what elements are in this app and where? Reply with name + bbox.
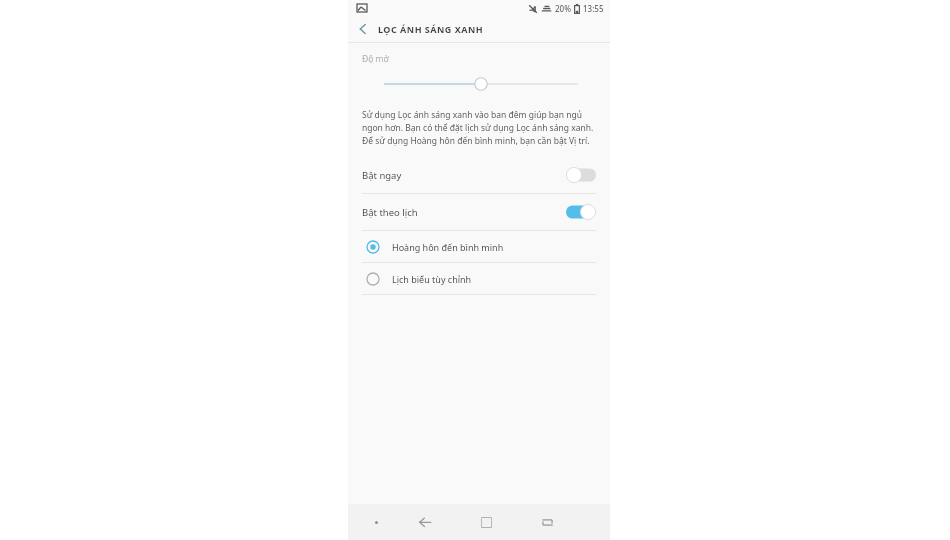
- button[interactable]: Show keyboard: [354, 504, 398, 540]
- button[interactable]: Back: [398, 504, 452, 540]
- button[interactable]: Home: [460, 504, 512, 540]
- staticText: LỌC ÁNH SÁNG XANH: [378, 23, 484, 35]
- staticText: Độ mờ: [362, 53, 389, 65]
- button[interactable]: Bật ngay: [348, 157, 610, 193]
- staticText: Sử dụng Lọc ánh sáng xanh vào ban đêm gi…: [362, 109, 594, 147]
- staticText: 20%: [555, 3, 571, 14]
- staticText: 13:55: [583, 3, 604, 14]
- button[interactable]: [348, 73, 610, 95]
- button[interactable]: Bật theo lịch: [348, 194, 610, 230]
- staticText: Bật ngay: [362, 169, 566, 182]
- button[interactable]: Recents: [520, 504, 574, 540]
- button[interactable]: Lịch biểu tùy chỉnh: [348, 263, 610, 294]
- staticText: Bật theo lịch: [362, 206, 566, 219]
- button[interactable]: Back: [348, 16, 378, 42]
- staticText: Lịch biểu tùy chỉnh: [392, 273, 472, 285]
- button[interactable]: Hoàng hôn đến bình minh: [348, 231, 610, 262]
- staticText: Hoàng hôn đến bình minh: [392, 241, 504, 253]
